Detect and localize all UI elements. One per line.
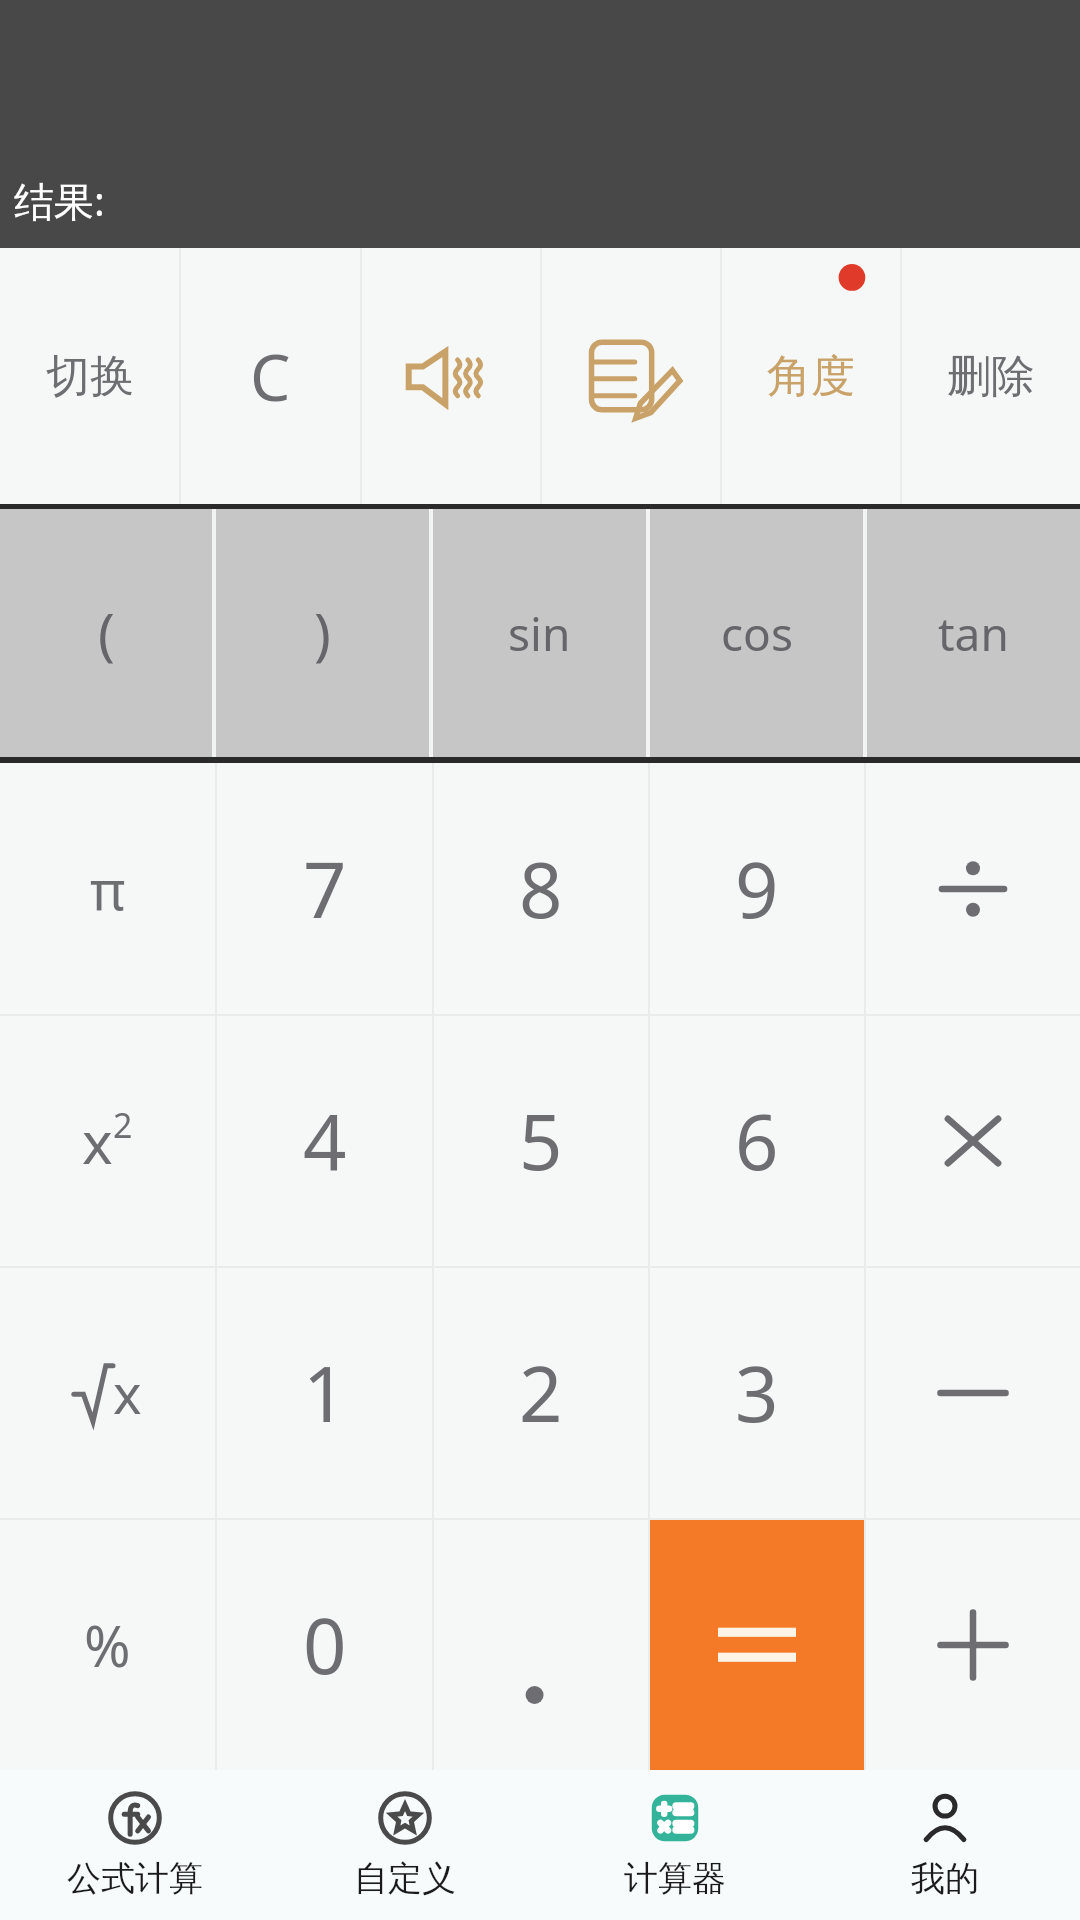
staticText: 9	[735, 837, 779, 941]
staticText: 3	[735, 1341, 779, 1445]
staticText: 结果:	[14, 173, 105, 228]
button[interactable]: π	[0, 763, 215, 1014]
button[interactable]: tan	[867, 509, 1080, 757]
button[interactable]: Sound	[362, 248, 540, 504]
button[interactable]: 4	[217, 1016, 432, 1266]
staticText: %	[84, 1607, 131, 1683]
staticText: 我的	[911, 1857, 979, 1900]
button[interactable]: plus	[866, 1520, 1080, 1770]
staticText: 5	[519, 1089, 563, 1193]
button[interactable]: 计算器	[540, 1770, 810, 1920]
button[interactable]: equals	[650, 1520, 864, 1770]
button[interactable]: 自定义	[270, 1770, 540, 1920]
button[interactable]: divide	[866, 763, 1080, 1014]
button[interactable]: 1	[217, 1268, 432, 1518]
button[interactable]: 切换	[0, 248, 179, 504]
staticText: 计算器	[624, 1857, 726, 1900]
staticText: 删除	[947, 349, 1035, 404]
button[interactable]: 3	[650, 1268, 864, 1518]
button[interactable]: cos	[650, 509, 863, 757]
staticText: x	[82, 1102, 113, 1181]
staticText: x	[113, 1356, 142, 1430]
button[interactable]: 7	[217, 763, 432, 1014]
staticText: 1	[303, 1341, 347, 1445]
button[interactable]: 9	[650, 763, 864, 1014]
staticText: 7	[303, 837, 347, 941]
staticText: 0	[303, 1593, 347, 1697]
button[interactable]: 6	[650, 1016, 864, 1266]
staticText: 公式计算	[67, 1857, 203, 1900]
button[interactable]: 8	[434, 763, 648, 1014]
button[interactable]: Notes	[542, 248, 720, 504]
staticText: 6	[735, 1089, 779, 1193]
staticText: 角度	[767, 349, 855, 404]
button[interactable]: C	[181, 248, 360, 504]
button[interactable]: 5	[434, 1016, 648, 1266]
button[interactable]: %	[0, 1520, 215, 1770]
staticText: 切换	[46, 349, 134, 404]
button[interactable]: x squared	[0, 1016, 215, 1266]
button[interactable]: 0	[217, 1520, 432, 1770]
button[interactable]: 我的	[810, 1770, 1080, 1920]
staticText: 2	[519, 1341, 563, 1445]
staticText: tan	[938, 602, 1009, 665]
button[interactable]: )	[216, 509, 429, 757]
button[interactable]: minus	[866, 1268, 1080, 1518]
staticText: 自定义	[354, 1857, 456, 1900]
button[interactable]: multiply	[866, 1016, 1080, 1266]
staticText: 8	[519, 837, 563, 941]
staticText: π	[90, 852, 126, 926]
button[interactable]: 公式计算	[0, 1770, 270, 1920]
staticText: C	[250, 333, 291, 420]
button[interactable]: 删除	[902, 248, 1080, 504]
staticText: sin	[508, 602, 571, 665]
staticText: (	[98, 595, 115, 671]
button[interactable]: (	[0, 509, 212, 757]
button[interactable]: square root of x	[0, 1268, 215, 1518]
button[interactable]: 角度	[722, 248, 900, 504]
button[interactable]: 2	[434, 1268, 648, 1518]
staticText: )	[314, 595, 331, 671]
staticText: 2	[113, 1102, 133, 1148]
button[interactable]: decimal point	[434, 1520, 648, 1770]
staticText: cos	[721, 602, 793, 665]
staticText: 4	[303, 1089, 347, 1193]
button[interactable]: sin	[433, 509, 646, 757]
